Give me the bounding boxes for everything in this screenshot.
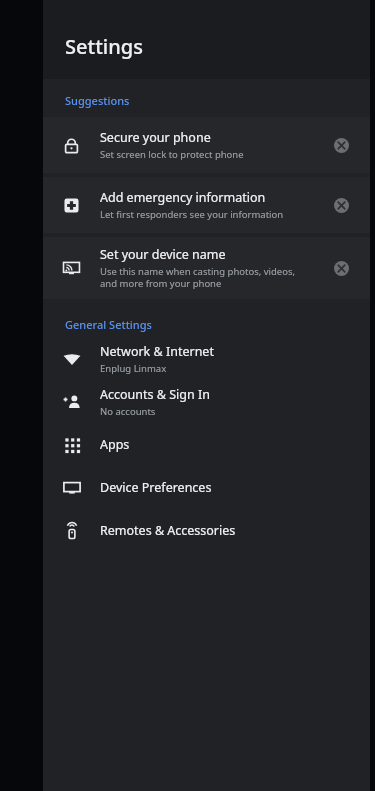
staticText: Apps [100, 436, 130, 453]
button[interactable]: Add emergency information [43, 177, 370, 233]
staticText: Device Preferences [100, 479, 212, 496]
staticText: No accounts [100, 405, 156, 418]
staticText: Network & Internet [100, 343, 214, 360]
button[interactable]: Set your device name [43, 237, 370, 299]
staticText: Accounts & Sign In [100, 386, 210, 403]
staticText: Remotes & Accessories [100, 522, 236, 539]
staticText: Settings [65, 33, 143, 60]
staticText: Suggestions [65, 93, 130, 108]
button[interactable]: Accounts & Sign In [43, 380, 370, 423]
staticText: General Settings [65, 317, 152, 332]
staticText: Set screen lock to protect phone [100, 148, 244, 161]
button[interactable]: Secure your phone [43, 117, 370, 173]
button[interactable]: Network & Internet [43, 337, 370, 380]
staticText: Set your device name [100, 246, 226, 263]
staticText: Use this name when casting photos, video… [100, 265, 296, 290]
button[interactable]: Remotes & Accessories [43, 509, 370, 552]
button[interactable]: Dismiss suggestion [312, 177, 370, 233]
staticText: Enplug Linmax [100, 362, 167, 375]
button[interactable]: Apps [43, 423, 370, 466]
staticText: Secure your phone [100, 129, 211, 146]
button[interactable]: Dismiss suggestion [312, 237, 370, 299]
button[interactable]: Dismiss suggestion [312, 117, 370, 173]
button[interactable]: Device Preferences [43, 466, 370, 509]
staticText: Add emergency information [100, 189, 266, 206]
staticText: Let first responders see your informatio… [100, 208, 284, 221]
